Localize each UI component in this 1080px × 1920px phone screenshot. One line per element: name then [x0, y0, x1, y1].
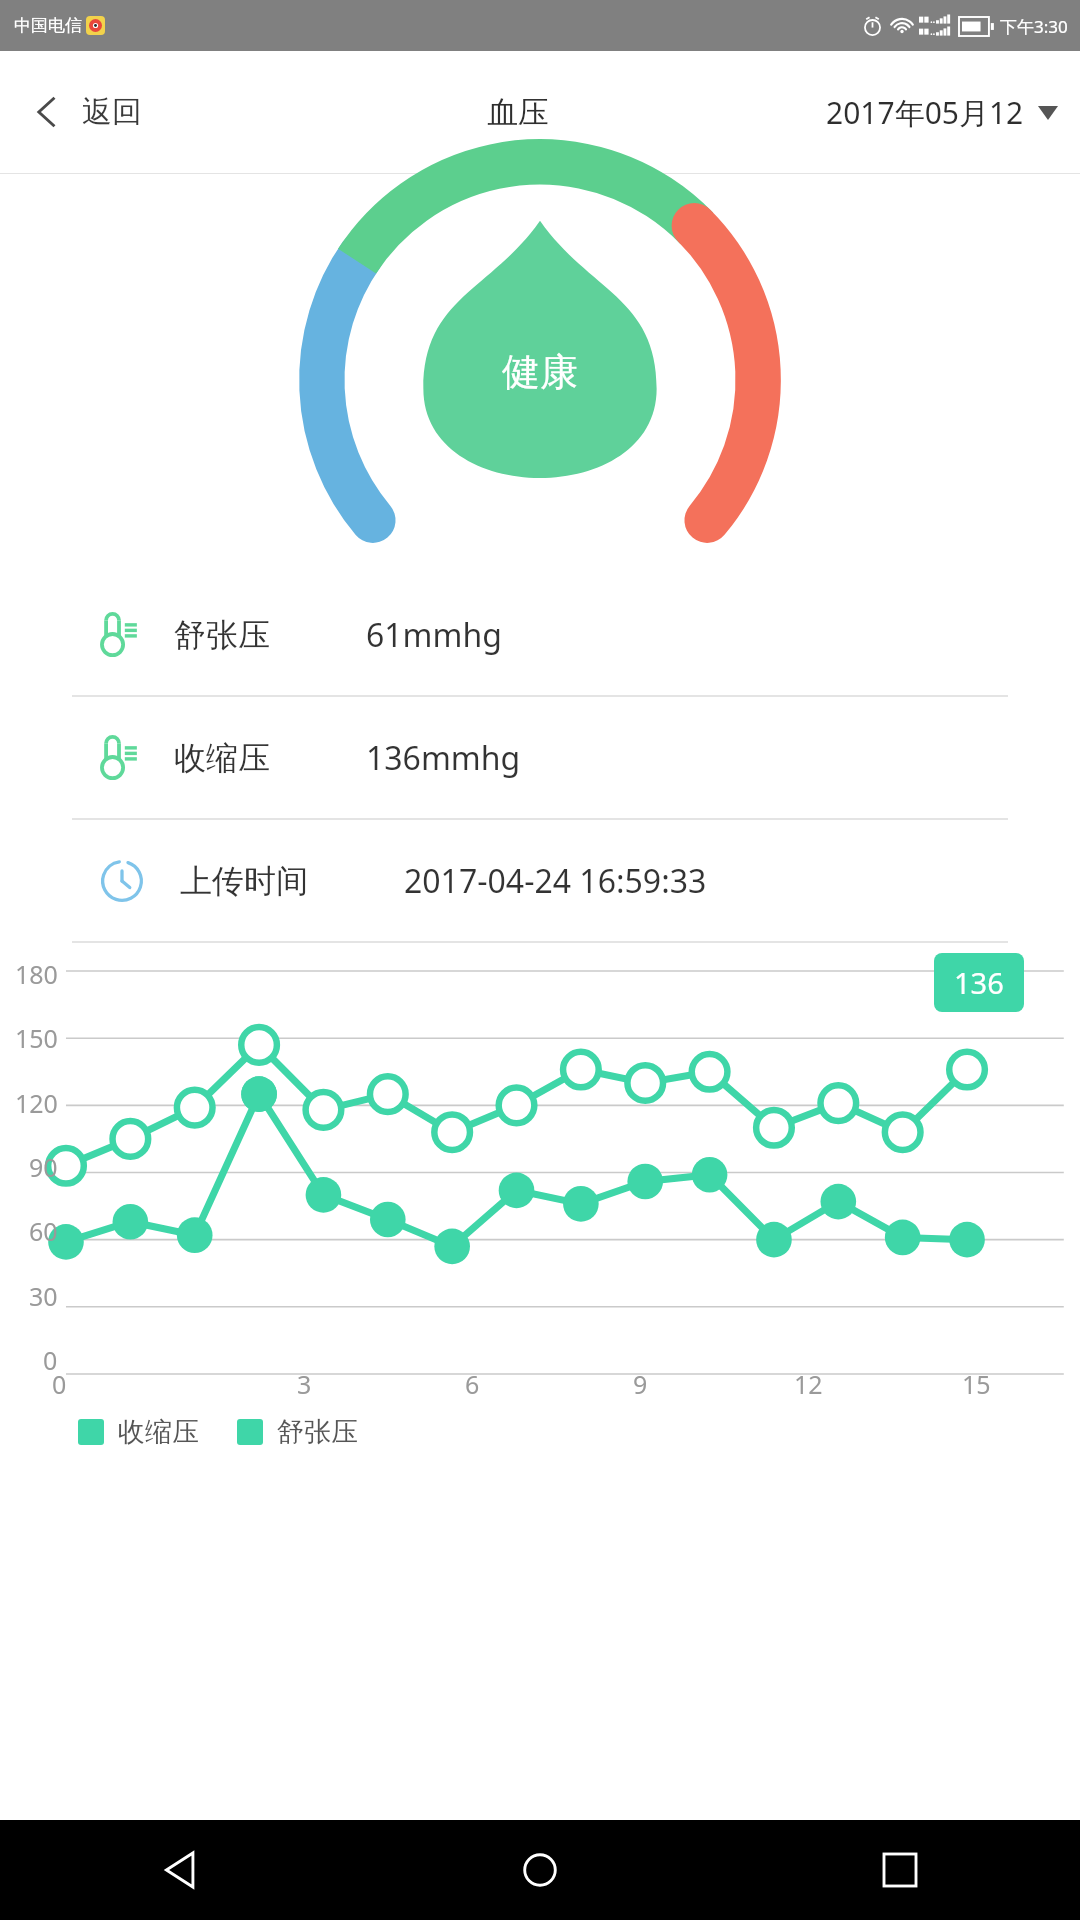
button[interactable]: Back	[0, 1820, 360, 1920]
button[interactable]: 返回	[0, 81, 162, 143]
button[interactable]: Recents	[720, 1820, 1080, 1920]
button[interactable]: 温度	[0, 574, 1080, 695]
staticText: 下午3:30	[1000, 15, 1068, 38]
staticText: 血压	[487, 93, 549, 132]
staticText: 0	[43, 1343, 58, 1377]
staticText: 150	[15, 1021, 58, 1055]
staticText: 120	[15, 1086, 58, 1120]
staticText: 舒张压	[174, 615, 270, 655]
other: 温度	[100, 611, 138, 659]
staticText: 返回	[82, 93, 142, 131]
staticText: 健康	[502, 348, 578, 396]
button[interactable]: 时间	[0, 820, 1080, 941]
staticText: 136mmhg	[366, 736, 521, 780]
staticText: 90	[29, 1150, 58, 1184]
button[interactable]: Home	[360, 1820, 720, 1920]
staticText: 收缩压	[174, 738, 270, 778]
staticText: 2017-04-24 16:59:33	[404, 859, 707, 903]
staticText: 136	[954, 963, 1004, 1002]
other: 温度	[100, 734, 138, 782]
staticText: 中国电信	[14, 15, 82, 36]
staticText: 61mmhg	[366, 613, 502, 657]
button[interactable]: 2017年05月12	[812, 80, 1080, 145]
button[interactable]: 136	[934, 953, 1024, 1012]
staticText: 0	[52, 1367, 67, 1401]
staticText: 3	[297, 1367, 312, 1401]
staticText: 60	[29, 1214, 58, 1248]
staticText: 9	[633, 1367, 648, 1401]
staticText: 收缩压	[118, 1415, 199, 1449]
staticText: 2017年05月12	[826, 92, 1024, 133]
staticText: 30	[29, 1279, 58, 1313]
staticText: 上传时间	[180, 861, 308, 901]
staticText: 舒张压	[277, 1415, 358, 1449]
button[interactable]: 温度	[0, 697, 1080, 818]
staticText: 180	[15, 957, 58, 991]
other: 时间	[100, 859, 144, 903]
staticText: 15	[962, 1367, 991, 1401]
staticText: 12	[794, 1367, 823, 1401]
staticText: 6	[465, 1367, 480, 1401]
